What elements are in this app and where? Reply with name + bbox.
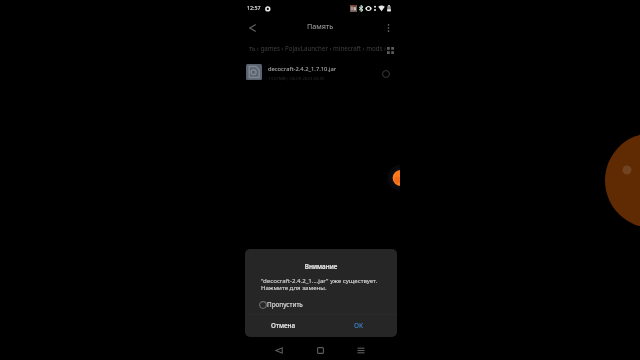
staticText: Память <box>307 21 334 31</box>
button[interactable]: Пропустить <box>259 300 303 309</box>
staticText: 13.07MB | 06.09.2023 20:55 <box>268 75 325 81</box>
button[interactable]: Home <box>312 342 328 358</box>
staticText: OK <box>354 321 364 330</box>
staticText: 12:57 <box>247 4 261 11</box>
staticText: "decocraft-2.4.2_1....jar" уже существуе… <box>261 276 378 292</box>
staticText: ть › games › PojavLauncher › minecraft ›… <box>249 44 386 52</box>
button[interactable]: Back <box>243 19 261 37</box>
staticText: Пропустить <box>267 300 303 309</box>
staticText: Отмена <box>271 321 296 330</box>
button[interactable]: Switch to grid view <box>384 44 396 56</box>
button[interactable]: Recent apps <box>353 342 369 358</box>
button[interactable]: Back <box>271 342 287 358</box>
button[interactable]: OK <box>321 314 397 337</box>
staticText: decocraft-2.4.2_1.7.10.jar <box>268 65 337 73</box>
button[interactable]: Отмена <box>245 314 321 337</box>
button[interactable]: decocraft-2.4.2_1.7.10.jar <box>240 58 400 88</box>
button[interactable]: More options <box>379 19 397 37</box>
staticText: Внимание <box>245 262 397 271</box>
button[interactable]: Select file <box>379 67 392 80</box>
